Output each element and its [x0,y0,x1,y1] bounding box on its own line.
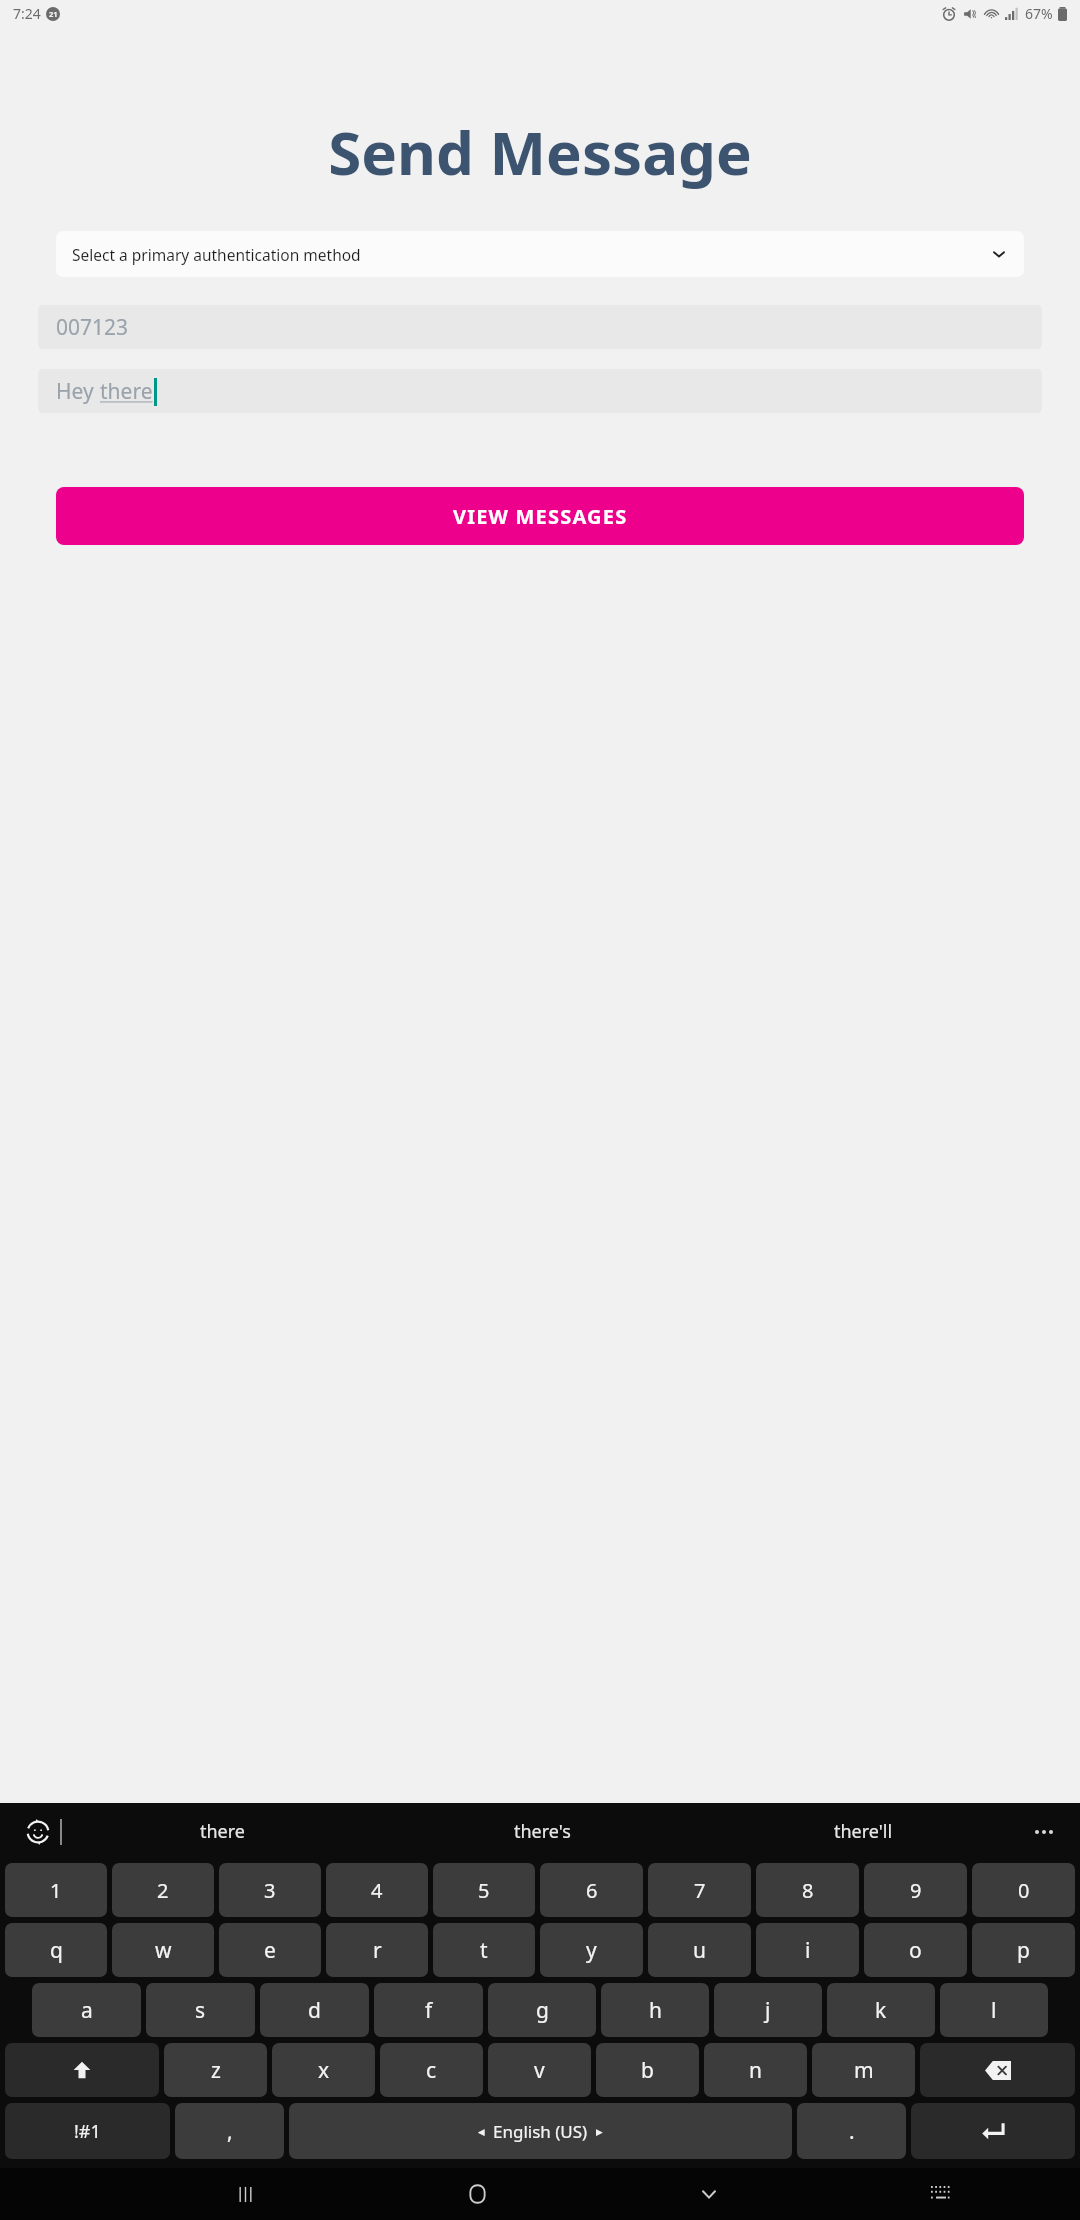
staticText: 5 [478,1877,490,1904]
staticText: 0 [1018,1877,1030,1904]
staticText: there'll [834,1819,893,1844]
button[interactable]: !#1 [5,2103,170,2159]
button[interactable]: there [62,1803,382,1860]
button[interactable]: , [175,2103,284,2159]
staticText: !#1 [74,2119,101,2144]
staticText: c [426,2056,437,2085]
button[interactable]: j [714,1983,822,2037]
button[interactable]: Shift [5,2043,159,2097]
button[interactable]: t [433,1923,535,1977]
staticText: i [805,1936,811,1965]
staticText: 1 [50,1877,62,1904]
staticText: VIEW MESSAGES [453,503,628,530]
staticText: there's [514,1819,571,1844]
staticText: 21 [49,9,58,19]
button[interactable]: f [374,1983,483,2037]
button[interactable]: Hide keyboard [593,2168,825,2220]
button[interactable]: Home [361,2168,593,2220]
staticText: q [50,1936,63,1965]
button[interactable]: r [326,1923,428,1977]
button[interactable]: u [648,1923,751,1977]
staticText: m [854,2056,874,2085]
staticText: p [1017,1936,1030,1965]
button[interactable]: 007123 [38,305,1042,349]
staticText: 7 [694,1877,706,1904]
button[interactable]: s [146,1983,255,2037]
button[interactable]: g [488,1983,596,2037]
button[interactable]: More suggestions [1024,1803,1064,1860]
button[interactable]: 7 [648,1863,751,1917]
button[interactable]: 4 [326,1863,428,1917]
staticText: English (US) [493,2120,588,2143]
button[interactable]: q [5,1923,107,1977]
button[interactable]: x [272,2043,375,2097]
button[interactable]: Enter [911,2103,1075,2159]
button[interactable]: Select a primary authentication method [56,231,1024,277]
staticText: Hey [56,377,100,406]
staticText: f [425,1996,433,2025]
staticText: 9 [910,1877,922,1904]
button[interactable]: there'll [703,1803,1024,1860]
staticText: d [308,1996,321,2025]
staticText: t [480,1936,488,1965]
button[interactable]: Hey [38,369,1042,413]
button[interactable]: v [488,2043,591,2097]
staticText: 67% [1025,4,1053,23]
staticText: ▸ [596,2124,603,2139]
staticText: b [641,2056,654,2085]
staticText: 4 [371,1877,383,1904]
staticText: s [195,1996,206,2025]
button[interactable]: there's [382,1803,703,1860]
staticText: k [875,1996,887,2025]
button[interactable]: z [164,2043,267,2097]
staticText: 007123 [56,313,129,342]
button[interactable]: l [940,1983,1048,2037]
staticText: l [991,1996,997,2025]
staticText: n [749,2056,762,2085]
button[interactable]: Change keyboard [825,2168,1057,2220]
button[interactable]: h [601,1983,709,2037]
button[interactable]: i [756,1923,859,1977]
button[interactable]: 5 [433,1863,535,1917]
staticText: v [534,2056,545,2085]
button[interactable]: y [540,1923,643,1977]
button[interactable]: m [812,2043,915,2097]
button[interactable]: 1 [5,1863,107,1917]
button[interactable]: p [972,1923,1075,1977]
button[interactable]: w [112,1923,214,1977]
staticText: 7:24 [13,4,41,23]
staticText: Send Message [0,111,1080,193]
button[interactable]: Backspace [920,2043,1075,2097]
staticText: 2 [157,1877,169,1904]
button[interactable]: . [797,2103,906,2159]
button[interactable]: 9 [864,1863,967,1917]
button[interactable]: Emoji and suggestions toggle [16,1810,60,1854]
button[interactable]: 6 [540,1863,643,1917]
button[interactable]: c [380,2043,483,2097]
button[interactable]: b [596,2043,699,2097]
button[interactable]: o [864,1923,967,1977]
button[interactable]: d [260,1983,369,2037]
staticText: there [100,377,153,406]
button[interactable]: a [32,1983,141,2037]
button[interactable]: 2 [112,1863,214,1917]
staticText: there [200,1819,245,1844]
staticText: h [649,1996,662,2025]
staticText: 8 [802,1877,814,1904]
button[interactable]: 0 [972,1863,1075,1917]
staticText: Select a primary authentication method [72,244,361,265]
button[interactable]: 3 [219,1863,321,1917]
button[interactable]: k [827,1983,935,2037]
button[interactable]: VIEW MESSAGES [56,487,1024,545]
staticText: w [155,1936,172,1965]
staticText: u [693,1936,706,1965]
staticText: 3 [264,1877,276,1904]
staticText: x [318,2056,330,2085]
button[interactable]: 8 [756,1863,859,1917]
button[interactable]: ◂ [289,2103,792,2159]
staticText: y [586,1936,597,1965]
button[interactable]: e [219,1923,321,1977]
button[interactable]: n [704,2043,807,2097]
staticText: o [909,1936,922,1965]
button[interactable]: Recent apps [129,2168,361,2220]
